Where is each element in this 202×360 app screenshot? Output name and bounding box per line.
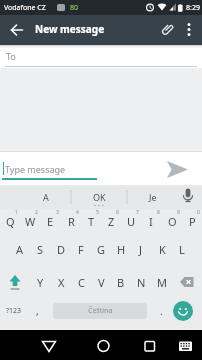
button[interactable]: G	[91, 237, 111, 261]
button[interactable]: A	[20, 185, 71, 209]
staticText: 80	[70, 3, 79, 13]
button[interactable]: J	[131, 237, 151, 261]
button[interactable]: K	[152, 237, 172, 261]
button[interactable]: P	[182, 209, 202, 233]
staticText: E	[47, 214, 54, 229]
button[interactable]: M	[152, 270, 172, 294]
button[interactable]	[136, 332, 162, 358]
button[interactable]: OK	[71, 185, 127, 209]
staticText: 8	[157, 209, 160, 216]
button[interactable]: X	[51, 270, 71, 294]
button[interactable]: I	[141, 209, 161, 233]
button[interactable]: Q	[0, 209, 20, 233]
button[interactable]: L	[172, 237, 192, 261]
button[interactable]: U	[121, 209, 141, 233]
button[interactable]: Čeština	[53, 303, 147, 319]
staticText: 5	[96, 209, 99, 216]
staticText: D	[57, 242, 66, 257]
button[interactable]	[174, 270, 200, 294]
button[interactable]	[2, 270, 28, 294]
staticText: I	[149, 214, 153, 229]
staticText: 7	[136, 209, 139, 216]
button[interactable]: H	[111, 237, 131, 261]
button[interactable]: T	[81, 209, 101, 233]
button[interactable]: To	[0, 45, 202, 68]
staticText: New message	[35, 22, 105, 36]
button[interactable]	[156, 18, 179, 41]
staticText: 8:29	[186, 3, 200, 13]
button[interactable]: W	[20, 209, 40, 233]
staticText: To	[6, 50, 16, 62]
button[interactable]	[164, 156, 190, 182]
button[interactable]	[173, 301, 193, 321]
staticText: T	[88, 214, 95, 229]
staticText: 9	[177, 209, 180, 216]
button[interactable]	[90, 332, 116, 358]
button[interactable]: D	[51, 237, 71, 261]
staticText: S	[37, 242, 44, 257]
staticText: Y	[37, 275, 44, 290]
staticText: A	[16, 242, 24, 257]
staticText: Čeština	[88, 306, 113, 316]
staticText: V	[98, 275, 105, 290]
staticText: R	[68, 214, 75, 229]
staticText: F	[78, 242, 84, 257]
staticText: 3	[56, 209, 59, 216]
button[interactable]: F	[71, 237, 91, 261]
staticText: .	[160, 304, 163, 318]
button[interactable]: S	[30, 237, 50, 261]
staticText: Z	[108, 214, 115, 229]
staticText: M	[157, 275, 167, 290]
button[interactable]: Je	[127, 185, 178, 209]
button[interactable]	[172, 332, 198, 358]
staticText: A	[43, 191, 49, 203]
button[interactable]: R	[61, 209, 81, 233]
staticText: B	[117, 275, 125, 290]
staticText: G	[97, 242, 106, 257]
staticText: W	[25, 214, 36, 229]
button[interactable]: N	[131, 270, 151, 294]
staticText: ?123	[6, 306, 22, 316]
staticText: K	[159, 242, 166, 257]
staticText: 4	[76, 209, 79, 216]
staticText: 0	[197, 209, 200, 216]
staticText: C	[78, 275, 85, 290]
staticText: 6	[116, 209, 119, 216]
staticText: X	[58, 275, 65, 290]
button[interactable]: ?123	[2, 299, 26, 323]
staticText: Type message	[5, 163, 66, 175]
staticText: H	[117, 242, 126, 257]
button[interactable]: B	[111, 270, 131, 294]
button[interactable]: Y	[30, 270, 50, 294]
staticText: J	[139, 242, 143, 257]
button[interactable]: A	[10, 237, 30, 261]
button[interactable]: ,	[27, 299, 47, 323]
staticText: Vodafone CZ	[4, 3, 46, 13]
staticText: U	[127, 214, 136, 229]
staticText: 2	[35, 209, 38, 216]
staticText: OK	[93, 191, 106, 203]
button[interactable]	[6, 19, 28, 41]
staticText: Je	[149, 191, 157, 203]
staticText: Q	[6, 214, 15, 229]
staticText: P	[189, 214, 196, 229]
staticText: ,	[36, 304, 39, 318]
button[interactable]: V	[91, 270, 111, 294]
button[interactable]: O	[162, 209, 182, 233]
button[interactable]: Z	[101, 209, 121, 233]
button[interactable]: E	[40, 209, 60, 233]
button[interactable]	[180, 18, 200, 38]
button[interactable]: C	[71, 270, 91, 294]
button[interactable]	[36, 332, 62, 358]
button[interactable]: .	[152, 299, 170, 323]
staticText: O	[168, 214, 177, 229]
staticText: N	[137, 275, 146, 290]
staticText: 1	[15, 209, 18, 216]
staticText: L	[179, 242, 185, 257]
